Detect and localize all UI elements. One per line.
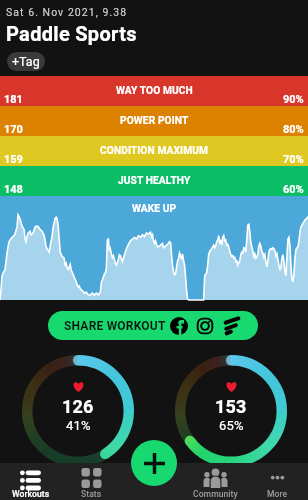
staticText: 41% <box>66 418 91 433</box>
staticText: POWER POINT <box>120 115 189 127</box>
staticText: SHARE WORKOUT <box>64 319 166 333</box>
staticText: Paddle Sports <box>6 22 137 45</box>
button[interactable]: SHARE WORKOUT <box>48 311 258 340</box>
button[interactable]: Community <box>184 463 246 500</box>
button[interactable]: Heart rate gauge <box>22 355 134 467</box>
staticText: 126 <box>62 396 94 417</box>
button[interactable]: Heart rate gauge <box>175 355 287 467</box>
staticText: JUST HEALTHY <box>118 175 191 187</box>
staticText: 153 <box>215 396 247 417</box>
staticText: Community <box>193 489 238 499</box>
button[interactable]: Workouts <box>0 463 61 500</box>
staticText: 65% <box>219 418 244 433</box>
staticText: WAKE UP <box>132 203 177 215</box>
staticText: More <box>267 489 288 499</box>
staticText: Sat 6. Nov 2021, 9.38 <box>6 6 128 18</box>
button[interactable]: Add workout <box>131 440 177 486</box>
staticText: 170 <box>4 123 23 136</box>
staticText: 60% <box>283 183 304 196</box>
staticText: WAY TOO MUCH <box>116 85 193 97</box>
staticText: 181 <box>4 93 23 106</box>
staticText: +Tag <box>12 54 40 69</box>
staticText: 148 <box>4 183 23 196</box>
staticText: 159 <box>4 153 23 166</box>
staticText: Workouts <box>12 489 50 499</box>
staticText: CONDITION MAXIMUM <box>100 145 208 157</box>
staticText: Stats <box>81 489 102 499</box>
staticText: 70% <box>283 153 304 166</box>
staticText: 80% <box>283 123 304 136</box>
button[interactable]: More <box>246 463 308 500</box>
staticText: 90% <box>283 93 304 106</box>
button[interactable]: Stats <box>61 463 122 500</box>
button[interactable]: +Tag <box>7 52 45 71</box>
